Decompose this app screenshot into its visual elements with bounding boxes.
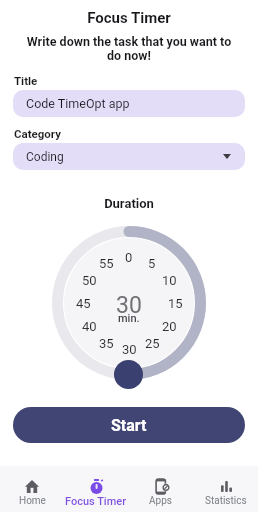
staticText: Write down the task that you want to do … <box>0 34 258 64</box>
staticText: Focus Timer <box>65 495 127 508</box>
staticText: Title <box>14 74 38 87</box>
button[interactable]: Statistics <box>193 466 258 512</box>
staticText: Focus Timer <box>0 9 258 27</box>
button[interactable]: Focus Timer <box>64 466 128 512</box>
staticText: Code TimeOpt app <box>26 96 130 111</box>
button[interactable]: Home <box>0 466 64 512</box>
staticText: 30 <box>122 342 137 357</box>
staticText: 5 <box>148 256 156 271</box>
staticText: 20 <box>162 319 177 334</box>
staticText: Coding <box>26 150 64 164</box>
staticText: min. <box>118 312 140 325</box>
staticText: 45 <box>76 296 91 311</box>
staticText: Category <box>14 127 61 140</box>
staticText: Statistics <box>205 495 247 507</box>
staticText: 35 <box>99 336 114 351</box>
staticText: Duration <box>0 196 258 211</box>
button[interactable]: Apps <box>128 466 193 512</box>
staticText: Start <box>111 416 147 435</box>
staticText: 0 <box>125 250 133 265</box>
staticText: 30 <box>116 292 142 319</box>
button[interactable] <box>114 360 143 389</box>
staticText: 50 <box>82 273 97 288</box>
staticText: Apps <box>149 495 172 507</box>
staticText: 10 <box>162 273 177 288</box>
staticText: 15 <box>168 296 183 311</box>
staticText: 55 <box>99 256 114 271</box>
button[interactable]: Coding <box>13 143 245 170</box>
staticText: 40 <box>82 319 97 334</box>
button[interactable]: Code TimeOpt app <box>13 90 245 117</box>
staticText: 25 <box>145 336 160 351</box>
button[interactable]: Start <box>13 407 245 443</box>
staticText: Home <box>19 495 46 507</box>
